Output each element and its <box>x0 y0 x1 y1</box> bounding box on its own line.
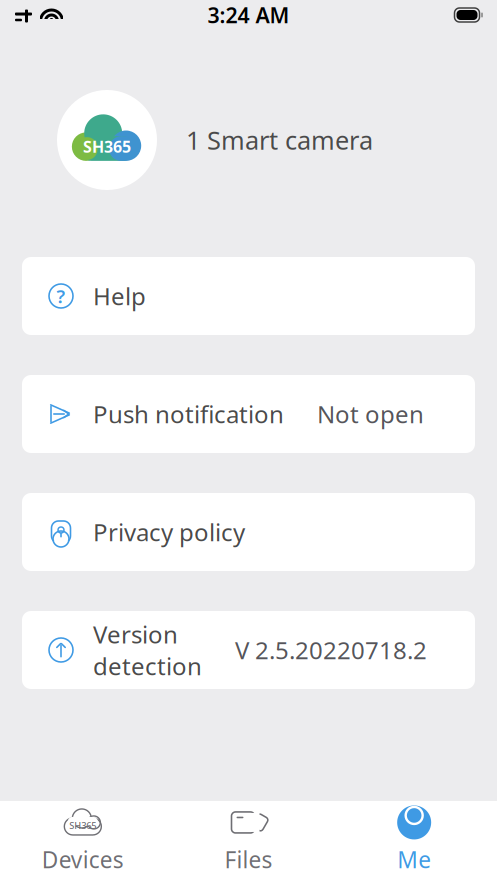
button[interactable]: SH365 <box>0 798 166 883</box>
staticText: SH365 <box>83 136 131 157</box>
staticText: SH365 <box>69 819 96 832</box>
staticText: Me <box>397 844 431 874</box>
staticText: ? <box>56 284 65 308</box>
button[interactable]: Push notification <box>22 375 475 453</box>
staticText: Help <box>93 280 146 312</box>
button[interactable]: ? <box>22 257 475 335</box>
staticText: 1 Smart camera <box>186 123 373 157</box>
staticText: Files <box>224 844 272 874</box>
staticText: Devices <box>42 844 124 874</box>
staticText: Version detection <box>93 618 202 682</box>
staticText: V 2.5.20220718.2 <box>235 634 427 666</box>
button[interactable]: Files <box>166 798 331 883</box>
staticText: Not open <box>317 398 424 430</box>
button[interactable]: Version detection <box>22 611 475 689</box>
button[interactable]: Privacy policy <box>22 493 475 571</box>
staticText: 3:24 AM <box>207 1 289 29</box>
button[interactable]: Me <box>331 798 497 883</box>
staticText: Privacy policy <box>93 516 245 548</box>
staticText: Push notification <box>93 398 284 430</box>
